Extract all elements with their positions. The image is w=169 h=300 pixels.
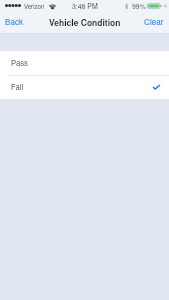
staticText: Clear	[144, 16, 164, 28]
staticText: Back	[5, 16, 24, 28]
staticText: Fail	[11, 81, 24, 92]
button[interactable]: Fail	[0, 75, 169, 99]
staticText: 3:48 PM	[72, 1, 98, 11]
staticText: Verizon	[24, 2, 45, 11]
other: Selected	[153, 85, 160, 89]
button[interactable]: Back	[0, 12, 30, 32]
staticText: 99%	[132, 1, 146, 11]
button[interactable]: Pass	[0, 51, 169, 75]
staticText: Pass	[11, 57, 28, 68]
button[interactable]: Clear	[138, 12, 169, 32]
staticText: Vehicle Condition	[49, 16, 121, 28]
